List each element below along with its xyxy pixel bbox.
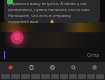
staticText: Напишите, что есть в отправку выходные (8, 13, 79, 19)
button[interactable]: Emoji (0, 62, 21, 73)
button[interactable]: Search (63, 62, 84, 73)
staticText: управлять вашу встречи. А также у нас кн… (8, 1, 94, 7)
button[interactable]: Key (78, 74, 86, 79)
button[interactable]: Clipboard (21, 62, 42, 73)
button[interactable]: Key (69, 74, 77, 79)
button[interactable]: управлять вашу встречи. А также у нас кн… (4, 0, 100, 23)
button[interactable]: Key (51, 74, 59, 79)
button[interactable]: Stickers (42, 62, 63, 73)
staticText: Отпр (87, 52, 100, 59)
staticText: сохраните ваш подкаст (8, 19, 49, 23)
button[interactable]: Key (96, 74, 104, 79)
button[interactable]: Settings (84, 62, 105, 73)
staticText: дозвонился, нужно написать что-то мне вс… (8, 7, 97, 13)
button[interactable]: Key (60, 74, 68, 79)
button[interactable]: Отпр (0, 48, 105, 62)
button[interactable]: Key (87, 74, 95, 79)
